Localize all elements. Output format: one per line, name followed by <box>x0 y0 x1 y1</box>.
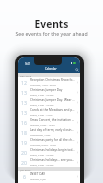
staticText: Friday, 9 Dec · All day <box>30 153 54 156</box>
staticText: Friday, 2 Dec · 17:00 <box>30 113 53 116</box>
staticText: Friday, 9 Dec · All day <box>30 163 54 166</box>
staticText: 20 <box>21 159 27 166</box>
staticText: DEC 2016 <box>20 74 32 77</box>
staticText: Christmas holidays begin today <box>30 148 75 152</box>
staticText: JAN 2017 <box>20 168 31 171</box>
button[interactable]: 18 <box>18 127 80 137</box>
button[interactable]: 6 <box>18 171 80 181</box>
staticText: Friday, 2 Dec · All day <box>30 93 54 96</box>
button[interactable]: 13 <box>18 97 80 107</box>
button[interactable]: 13 <box>18 107 80 117</box>
button[interactable]: 16 <box>18 117 80 127</box>
staticText: 13 <box>21 89 27 96</box>
staticText: 18 <box>21 129 27 136</box>
staticText: 16 <box>21 119 27 126</box>
staticText: Events <box>0 17 103 31</box>
staticText: Monday, 5 Dec · 14:00 <box>30 123 55 126</box>
staticText: Friday, 2 Dec · All day <box>30 103 54 106</box>
staticText: Christmas party for all the children <box>30 138 75 142</box>
button[interactable]: 12 <box>18 77 80 87</box>
staticText: 13 <box>21 109 27 116</box>
staticText: Carols at the Meadows and plenty more <box>30 108 75 112</box>
staticText: Last day of term, early closing at 2pm <box>30 128 75 132</box>
staticText: Christmas holidays – see you in Jan <box>30 158 75 162</box>
staticText: 6 <box>23 173 26 180</box>
staticText: 13 <box>21 99 27 106</box>
staticText: 12 <box>21 79 27 86</box>
button[interactable]: 20 <box>18 147 80 157</box>
button[interactable]: 13 <box>18 87 80 97</box>
staticText: Christmas Jumper Day <box>30 88 63 92</box>
staticText: Calendar <box>45 67 57 71</box>
staticText: Monday, 6 Jan <box>30 177 46 180</box>
button[interactable]: 20 <box>18 157 80 167</box>
staticText: Xmas Concert, the invitation only show <box>30 118 75 122</box>
staticText: See events for the year ahead <box>0 30 103 37</box>
staticText: Wednesday, 7 Dec <box>30 133 51 136</box>
button[interactable]: Search <box>75 68 79 72</box>
staticText: Reception Christmas Show for Parents 9.3… <box>30 78 75 82</box>
button[interactable]: 19 <box>18 137 80 147</box>
staticText: 19 <box>21 139 27 146</box>
staticText: Thursday, 1 Dec · 09:30 <box>30 83 56 86</box>
staticText: 9:41 <box>25 62 31 66</box>
staticText: Christmas Jumper Day. Wear something <box>30 98 75 102</box>
staticText: 20 <box>21 149 27 156</box>
staticText: INSET DAY <box>30 172 46 176</box>
staticText: Thursday, 8 Dec · 13:00 <box>30 143 56 146</box>
